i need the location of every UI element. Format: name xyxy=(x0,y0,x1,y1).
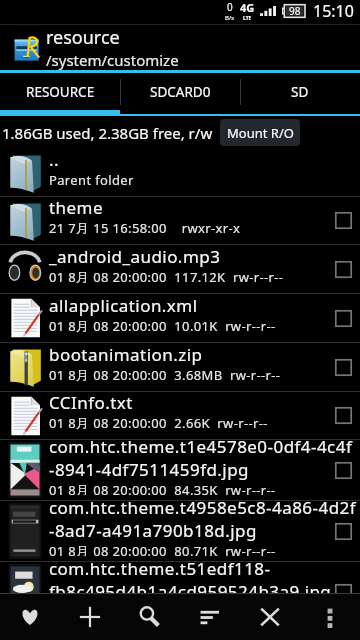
button[interactable]: New xyxy=(60,594,120,640)
staticText: 01 8月 08 20:00:00 2.66K rw-r--r-- xyxy=(49,414,268,432)
button[interactable]: More xyxy=(300,594,360,640)
button[interactable]: _android_audio.mp3 xyxy=(0,245,360,293)
button[interactable]: .. xyxy=(0,149,360,196)
staticText: CCInfo.txt xyxy=(49,391,133,414)
button[interactable]: Mount R/O xyxy=(220,119,300,146)
button[interactable]: CCInfo.txt xyxy=(0,392,360,439)
staticText: allapplication.xml xyxy=(49,294,198,317)
button[interactable]: bootanimation.zip xyxy=(0,343,360,391)
staticText: com.htc.theme.t4958e5c8-4a86-4d2f xyxy=(49,496,357,519)
staticText: 01 8月 08 20:00:00 117.12K rw-r--r-- xyxy=(49,268,284,286)
button[interactable]: allapplication.xml xyxy=(0,294,360,342)
button[interactable]: Close xyxy=(240,594,300,640)
button[interactable]: Search xyxy=(120,594,180,640)
staticText: theme xyxy=(49,196,103,219)
staticText: 01 8月 08 20:00:00 3.68MB rw-r--r-- xyxy=(49,366,281,384)
staticText: -8941-4df7511459fd.jpg xyxy=(49,458,249,481)
button[interactable]: com.htc.theme.t4958e5c8-4a86-4d2f xyxy=(0,501,360,561)
staticText: SD xyxy=(291,83,309,101)
staticText: com.htc.theme.t51edf118- xyxy=(49,557,271,580)
staticText: 21 7月 15 16:58:00 rwxr-xr-x xyxy=(49,219,241,237)
staticText: fb8c495d4b1a4cd959524b3a9.jpg xyxy=(49,580,332,603)
button[interactable]: com.htc.theme.t51edf118- xyxy=(0,562,360,622)
staticText: 98 xyxy=(289,4,301,18)
button[interactable]: Sort xyxy=(180,594,240,640)
staticText: resource xyxy=(46,25,120,50)
staticText: 01 8月 08 20:00:00 10.01K rw-r--r-- xyxy=(49,317,276,335)
staticText: bootanimation.zip xyxy=(49,343,203,366)
button[interactable]: Bookmarks xyxy=(0,594,60,640)
staticText: LTE xyxy=(243,15,252,22)
staticText: Mount R/O xyxy=(227,124,294,142)
staticText: -8ad7-a491a790b18d.jpg xyxy=(49,519,257,542)
staticText: Parent folder xyxy=(49,171,134,189)
staticText: 0 xyxy=(227,0,233,14)
button[interactable]: SDCARD0 xyxy=(120,73,240,110)
staticText: .. xyxy=(49,148,60,171)
staticText: _android_audio.mp3 xyxy=(49,245,221,268)
staticText: 1.86GB used, 2.38GB free, r/w xyxy=(2,123,213,143)
button[interactable]: theme xyxy=(0,197,360,244)
button[interactable]: SD xyxy=(240,73,360,110)
staticText: RESOURCE xyxy=(26,83,95,101)
staticText: com.htc.theme.t1e4578e0-0df4-4c4f xyxy=(49,435,353,458)
button[interactable]: com.htc.theme.t1e4578e0-0df4-4c4f xyxy=(0,440,360,500)
staticText: 01 8月 08 20:00:00 84.35K rw-r--r-- xyxy=(49,481,276,495)
staticText: SDCARD0 xyxy=(150,83,211,101)
staticText: 15:10 xyxy=(313,0,354,22)
staticText: 01 8月 08 20:00:00 80.71K rw-r--r-- xyxy=(49,542,276,556)
button[interactable]: RESOURCE xyxy=(0,73,120,110)
staticText: /system/customize xyxy=(46,50,179,70)
staticText: B/s xyxy=(225,14,235,22)
staticText: 4G xyxy=(240,0,255,15)
staticText: 01 8月 08 20:00:00 92.10K rw-r--r-- xyxy=(49,603,276,617)
